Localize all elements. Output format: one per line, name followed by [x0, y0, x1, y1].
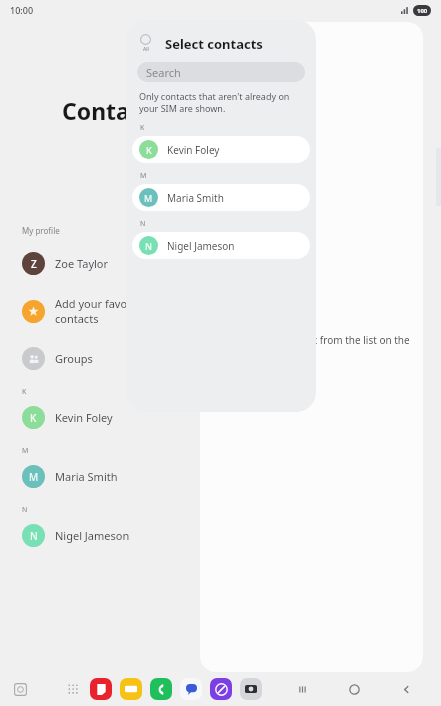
button[interactable]: Internet — [210, 678, 232, 700]
staticText: K — [22, 387, 27, 397]
button[interactable]: Select all — [140, 34, 151, 53]
staticText: My profile — [22, 225, 60, 236]
staticText: K — [146, 144, 152, 156]
button[interactable]: Phone — [150, 678, 172, 700]
button[interactable]: Files — [120, 678, 142, 700]
button[interactable]: M — [0, 459, 200, 493]
staticText: Groups — [55, 351, 93, 366]
button[interactable]: Camera — [240, 678, 262, 700]
button[interactable]: K — [132, 136, 310, 163]
button[interactable]: Home — [341, 676, 367, 702]
staticText: Maria Smith — [167, 191, 224, 205]
staticText: N — [22, 505, 28, 515]
button[interactable]: N — [0, 518, 200, 552]
button[interactable]: Groups — [0, 343, 200, 373]
staticText: M — [22, 446, 29, 456]
staticText: Only contacts that aren't already on you… — [139, 90, 290, 115]
button[interactable]: Recent apps — [289, 676, 315, 702]
staticText: Select a contact from the list on the le… — [244, 333, 410, 361]
button[interactable]: Z — [0, 246, 200, 280]
button[interactable]: Messages — [180, 678, 202, 700]
staticText: Maria Smith — [55, 469, 118, 484]
staticText: All — [143, 46, 149, 53]
staticText: Kevin Foley — [55, 410, 113, 425]
staticText: Contacts — [62, 95, 164, 126]
button[interactable]: Recents — [0, 672, 40, 706]
button[interactable]: M — [132, 184, 310, 211]
staticText: 100 — [417, 7, 428, 15]
button[interactable]: N — [132, 232, 310, 259]
staticText: Search — [146, 65, 181, 80]
staticText: Zoe Taylor — [55, 256, 109, 271]
staticText: M — [29, 470, 39, 484]
staticText: Select contacts — [165, 35, 263, 53]
staticText: N — [140, 219, 146, 229]
staticText: Add your favourite contacts — [55, 296, 152, 326]
staticText: Kevin Foley — [167, 143, 220, 157]
staticText: N — [30, 529, 38, 543]
staticText: M — [140, 171, 147, 181]
staticText: Nigel Jameson — [55, 528, 130, 543]
button[interactable]: K — [0, 400, 200, 434]
button[interactable]: Add your favourite contacts — [0, 296, 200, 326]
button[interactable]: Back — [393, 676, 419, 702]
staticText: Nigel Jameson — [167, 239, 235, 253]
button[interactable]: Notes — [90, 678, 112, 700]
staticText: N — [145, 240, 152, 252]
staticText: K — [30, 411, 37, 425]
staticText: K — [140, 123, 145, 133]
button[interactable]: Apps — [66, 682, 80, 696]
button[interactable]: Search — [137, 62, 305, 82]
staticText: Z — [31, 257, 37, 271]
staticText: 10:00 — [10, 4, 34, 16]
staticText: M — [144, 192, 153, 204]
